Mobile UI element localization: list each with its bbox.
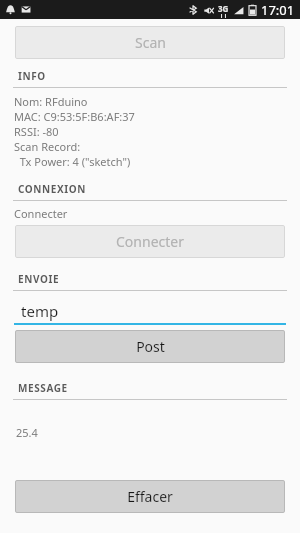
button[interactable]: temp bbox=[14, 299, 286, 325]
button[interactable]: Scan bbox=[15, 26, 285, 59]
staticText: Connecter bbox=[14, 206, 68, 221]
staticText: Tx Power: 4 ("sketch") bbox=[14, 154, 131, 169]
staticText: MAC: C9:53:5F:B6:AF:37 bbox=[14, 109, 135, 124]
staticText: 3G bbox=[218, 3, 229, 14]
staticText: Scan Record: bbox=[14, 139, 81, 154]
staticText: INFO bbox=[18, 69, 46, 83]
staticText: Connecter bbox=[116, 232, 184, 251]
staticText: temp bbox=[21, 301, 59, 321]
button[interactable]: Post bbox=[15, 330, 285, 363]
staticText: Scan bbox=[135, 33, 166, 52]
button[interactable]: Connecter bbox=[15, 225, 285, 258]
staticText: 25.4 bbox=[16, 425, 38, 440]
staticText: RSSI: -80 bbox=[14, 124, 59, 139]
staticText: Nom: RFduino bbox=[14, 94, 88, 109]
button[interactable]: Effacer bbox=[15, 480, 285, 513]
staticText: MESSAGE bbox=[18, 381, 68, 395]
staticText: ENVOIE bbox=[18, 272, 60, 286]
staticText: Effacer bbox=[127, 487, 173, 506]
staticText: 17:01 bbox=[261, 1, 295, 19]
staticText: CONNEXION bbox=[18, 182, 87, 196]
staticText: Post bbox=[136, 337, 165, 356]
